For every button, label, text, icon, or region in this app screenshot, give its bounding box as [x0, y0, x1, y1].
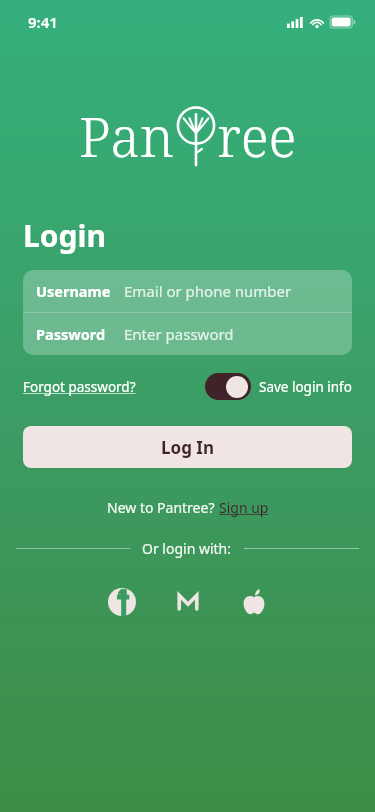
staticText: Enter password [124, 324, 234, 344]
staticText: Log In [161, 436, 214, 459]
button[interactable]: Log In [23, 426, 352, 468]
staticText: Forgot password? [23, 378, 136, 396]
button[interactable]: Password [23, 313, 352, 355]
staticText: Username [36, 281, 111, 301]
button[interactable]: Sign up [219, 498, 269, 517]
staticText: Sign up [219, 498, 269, 517]
staticText: Or login with: [142, 539, 232, 558]
button[interactable]: Log in with Google [166, 580, 210, 624]
button[interactable]: Save login info [205, 373, 352, 400]
staticText: ree [217, 99, 297, 171]
staticText: 9:41 [28, 12, 58, 32]
staticText: Email or phone number [124, 281, 292, 301]
staticText: Pan [79, 99, 174, 171]
button[interactable]: Log in with Apple [232, 580, 276, 624]
button[interactable]: Forgot password? [23, 378, 136, 396]
staticText: Login [23, 215, 106, 256]
staticText: Save login info [259, 378, 352, 396]
staticText: New to Pantree? [107, 498, 219, 517]
button[interactable]: Log in with Facebook [100, 580, 144, 624]
staticText: Password [36, 324, 106, 344]
button[interactable]: Username [23, 270, 352, 312]
